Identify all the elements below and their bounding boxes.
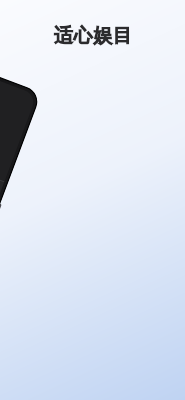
button[interactable]: Phone preview showing dark mode settings <box>0 0 185 400</box>
